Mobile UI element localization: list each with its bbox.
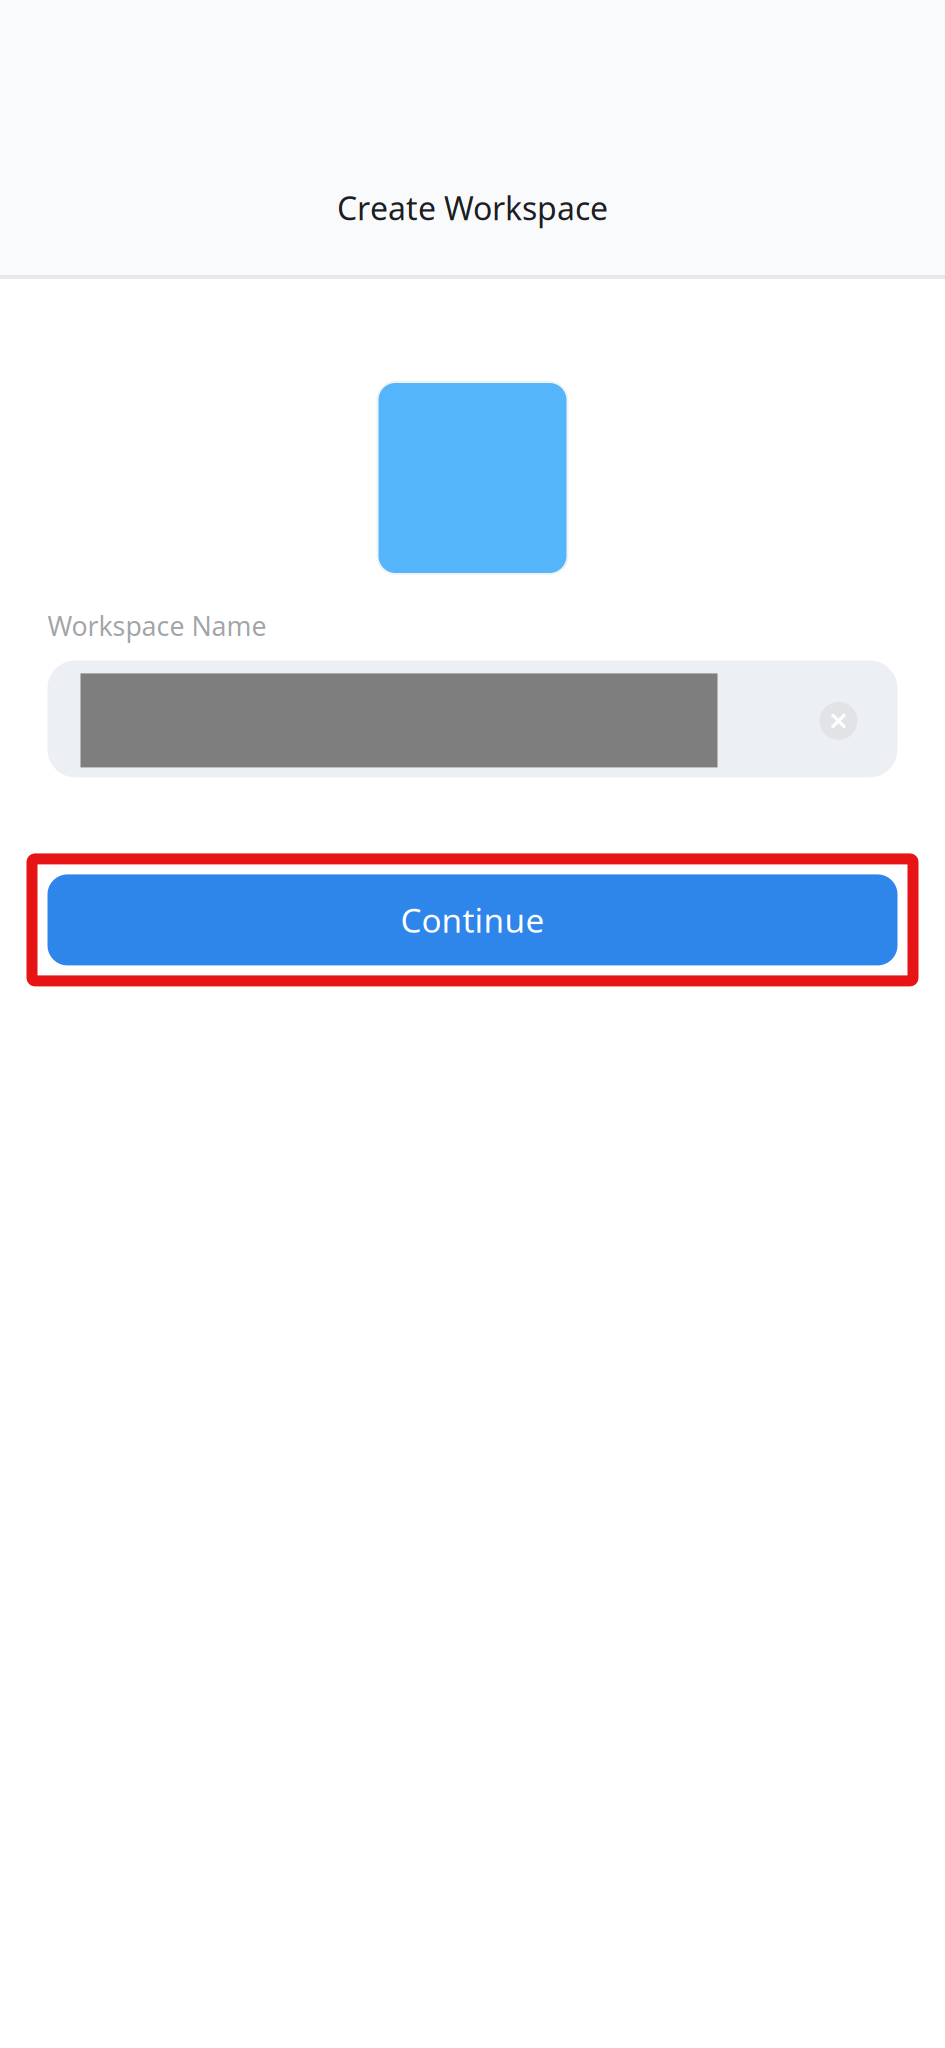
button[interactable]: Choose workspace icon	[376, 381, 568, 575]
staticText: Continue	[400, 898, 544, 942]
button[interactable]: Continue	[47, 874, 897, 965]
button[interactable]: Clear text	[801, 660, 875, 777]
staticText: Workspace Name	[47, 608, 266, 643]
button[interactable]: Workspace Name	[47, 660, 897, 777]
staticText: Create Workspace	[337, 186, 608, 229]
